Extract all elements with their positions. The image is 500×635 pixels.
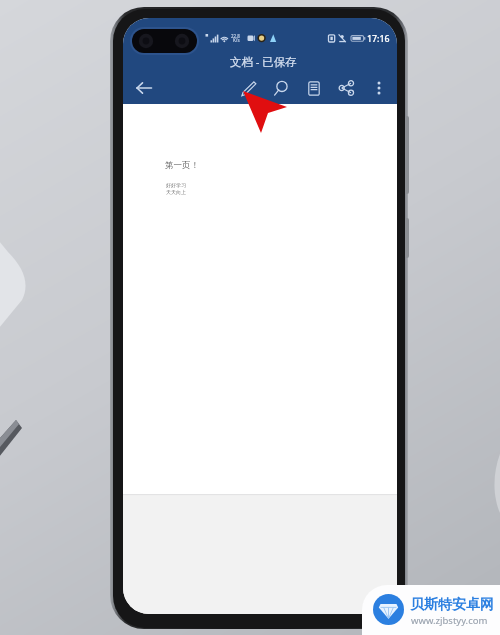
staticText: 文档 - 已保存 xyxy=(230,54,297,70)
button[interactable]: Search xyxy=(268,75,294,101)
staticText: 好好学习 天天向上 xyxy=(166,182,186,196)
button[interactable]: More xyxy=(366,75,392,101)
staticText: www.zjbstyy.com xyxy=(411,614,488,627)
staticText: 17:16 xyxy=(367,33,390,45)
staticText: 贝斯特安卓网 xyxy=(410,596,494,614)
staticText: K/s xyxy=(233,37,240,43)
staticText: 第一页！ xyxy=(165,160,199,171)
staticText: 22.8 xyxy=(231,33,240,39)
button[interactable]: Back xyxy=(131,75,157,101)
button[interactable]: Edit xyxy=(235,75,261,101)
button[interactable]: View xyxy=(301,75,327,101)
button[interactable]: Share xyxy=(333,75,359,101)
